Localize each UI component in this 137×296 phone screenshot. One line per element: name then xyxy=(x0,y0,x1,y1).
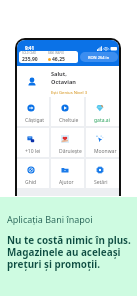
staticText: +10 lei xyxy=(25,148,41,155)
staticText: Setări xyxy=(94,179,108,186)
button[interactable]: RON 264 in xyxy=(80,52,118,62)
staticText: BANI ÎNAPOI xyxy=(48,51,64,55)
staticText: Nu te costă nimic în plus. Magazinele au… xyxy=(7,233,131,271)
button[interactable]: SOLD CARD xyxy=(19,51,78,63)
button[interactable]: Ajutor xyxy=(51,159,84,188)
button[interactable]: Ghid xyxy=(17,159,49,188)
button[interactable]: Setări xyxy=(86,159,119,188)
staticText: Ești Genius Nivel 3 xyxy=(51,90,88,96)
staticText: 9:41 xyxy=(25,45,34,51)
staticText: Ajutor xyxy=(59,179,74,186)
button[interactable]: Cheltuie xyxy=(51,97,84,126)
staticText: Cheltuie xyxy=(59,117,79,124)
staticText: Dăruiește xyxy=(59,148,82,155)
staticText: RON 264 in xyxy=(88,55,110,60)
staticText: Salut, Octavian xyxy=(51,70,76,86)
button[interactable]: Câștigat xyxy=(17,97,49,126)
staticText: Câștigat xyxy=(25,117,45,124)
button[interactable]: Dăruiește xyxy=(51,128,84,157)
staticText: Aplicația Bani înapoi xyxy=(7,213,93,225)
button[interactable]: Moonware xyxy=(86,128,119,157)
other: Status xyxy=(97,46,114,51)
staticText: 235,90 xyxy=(22,56,38,63)
button[interactable]: gata.ai xyxy=(86,97,119,126)
staticText: 46,25 xyxy=(52,56,65,63)
staticText: Ghid xyxy=(25,179,37,186)
staticText: Moonware xyxy=(94,148,119,157)
staticText: gata.ai xyxy=(94,117,110,124)
staticText: SOLD CARD xyxy=(22,51,37,55)
button[interactable]: +10 lei xyxy=(17,128,49,157)
